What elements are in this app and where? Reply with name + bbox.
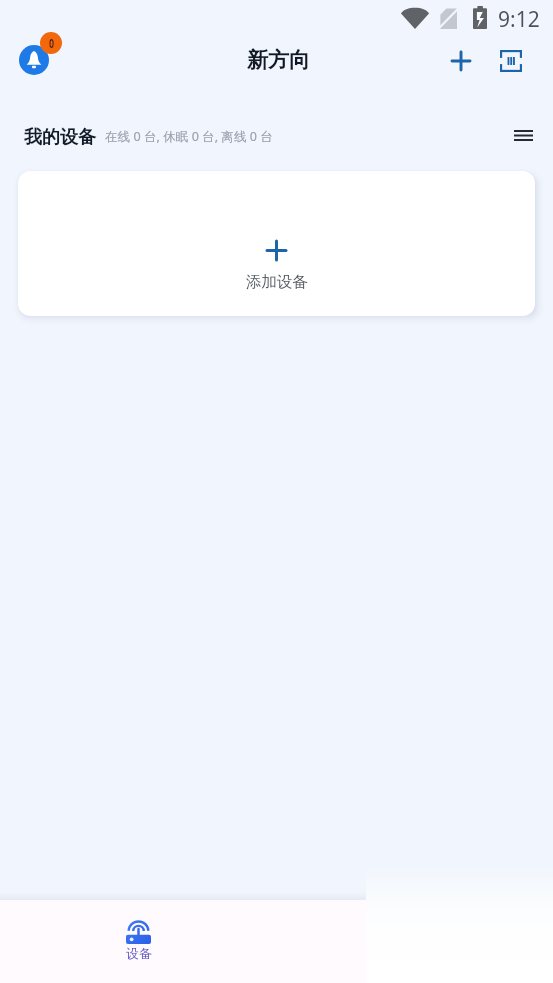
button[interactable]: Scan (491, 41, 531, 81)
staticText: 添加设备 (246, 272, 308, 292)
button[interactable]: 添加设备 (18, 171, 535, 316)
button[interactable]: Menu (504, 116, 542, 154)
button[interactable]: 设备 (84, 900, 193, 983)
staticText: 设备 (126, 945, 152, 961)
staticText: 0 (49, 35, 54, 51)
button[interactable]: Add (441, 41, 481, 81)
staticText: 新方向 (247, 47, 310, 73)
staticText: 9:12 (498, 5, 540, 34)
staticText: 在线 0 台, 休眠 0 台, 离线 0 台 (105, 128, 273, 145)
staticText: 我的设备 (24, 126, 96, 149)
button[interactable]: Notifications (19, 32, 62, 75)
